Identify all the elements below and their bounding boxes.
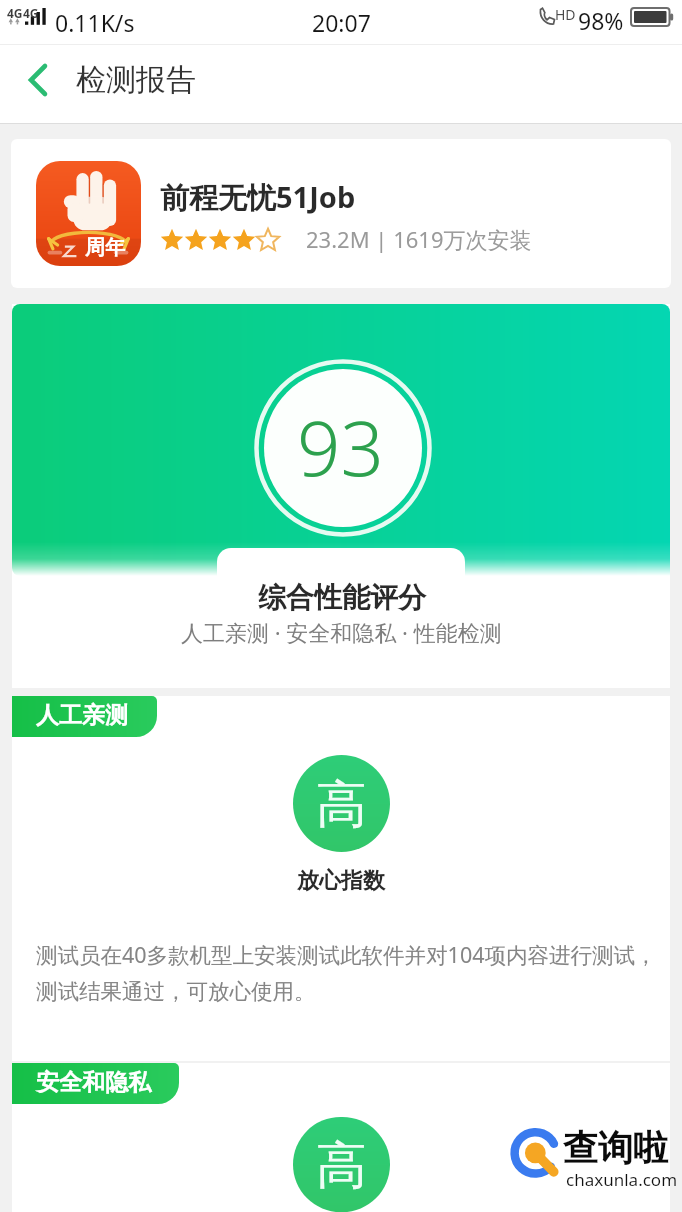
staticText: 高 <box>316 773 367 837</box>
staticText: 人工亲测 <box>36 701 128 730</box>
staticText: 4G <box>23 5 39 21</box>
staticText: 0.11K/s <box>55 7 135 38</box>
staticText: 20:07 <box>312 7 371 38</box>
staticText: 放心指数 <box>12 867 670 895</box>
staticText: 4G <box>7 5 23 21</box>
staticText: 查询啦 <box>563 1126 668 1170</box>
staticText: 前程无忧51Job <box>160 177 356 217</box>
staticText: chaxunla.com <box>566 1168 678 1191</box>
staticText: 测试员在40多款机型上安装测试此软件并对104项内容进行测试， <box>36 940 670 969</box>
staticText: HD <box>555 5 576 24</box>
staticText: 测试结果通过，可放心使用。 <box>36 978 670 1005</box>
staticText: 高 <box>316 1134 367 1198</box>
staticText: 周年 <box>85 235 125 260</box>
staticText: 人工亲测 · 安全和隐私 · 性能检测 <box>181 617 502 647</box>
button[interactable]: 周年 <box>11 139 671 288</box>
staticText: 93 <box>297 395 384 499</box>
staticText: 检测报告 <box>76 61 196 99</box>
staticText: 综合性能评分 <box>258 580 426 615</box>
staticText: 23.2M | 1619万次安装 <box>306 224 532 254</box>
staticText: 安全和隐私 <box>36 1068 151 1097</box>
staticText: 98% <box>578 5 624 36</box>
button[interactable]: Back <box>12 59 64 111</box>
